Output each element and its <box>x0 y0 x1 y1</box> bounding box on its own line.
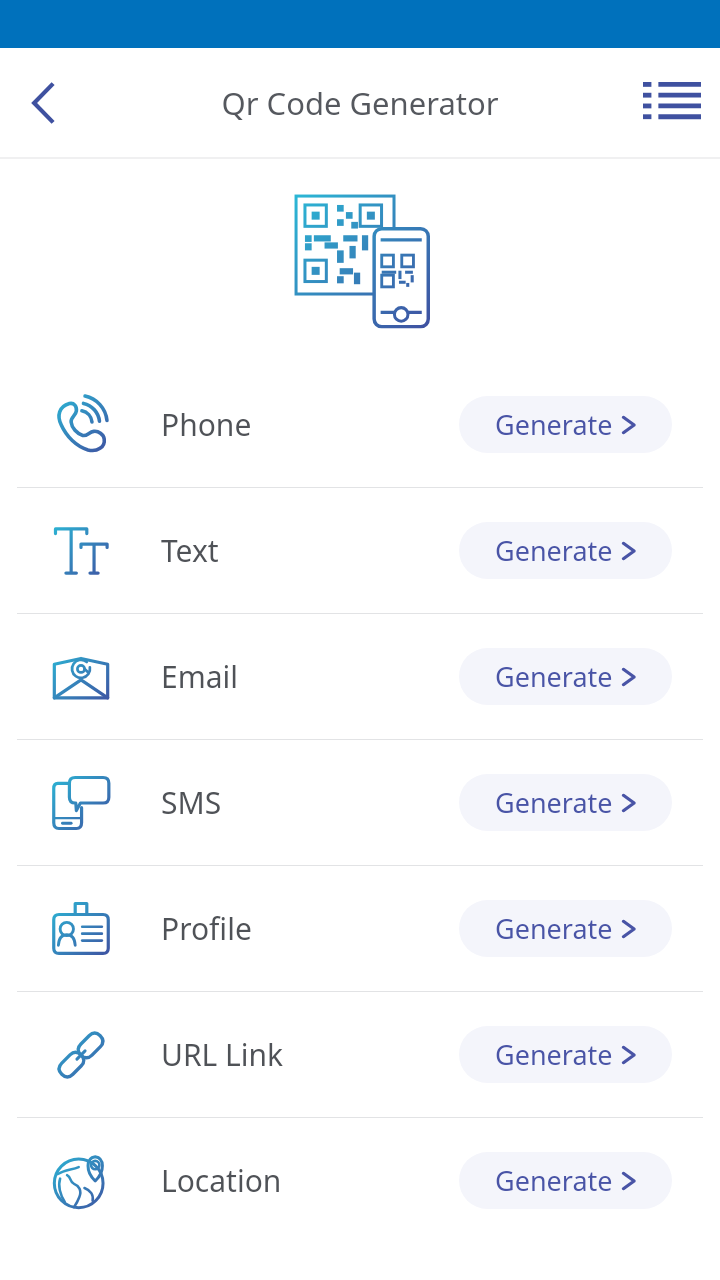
staticText: Profile <box>161 908 252 949</box>
button[interactable]: SMS <box>0 740 720 865</box>
staticText: Phone <box>161 404 252 445</box>
button[interactable]: Generate <box>459 396 672 453</box>
button[interactable]: Profile <box>0 866 720 991</box>
staticText: Generate <box>495 658 613 695</box>
staticText: Text <box>161 530 219 571</box>
button[interactable]: Generate <box>459 522 672 579</box>
staticText: Generate <box>495 1162 613 1199</box>
button[interactable]: Generate <box>459 1026 672 1083</box>
staticText: Qr Code Generator <box>221 82 499 124</box>
staticText: Location <box>161 1160 282 1201</box>
staticText: Generate <box>495 532 613 569</box>
button[interactable]: Text <box>0 488 720 613</box>
staticText: SMS <box>161 782 222 823</box>
button[interactable]: Generate <box>459 900 672 957</box>
button[interactable]: Generate <box>459 648 672 705</box>
staticText: URL Link <box>161 1034 284 1075</box>
button[interactable]: Location <box>0 1118 720 1243</box>
staticText: Generate <box>495 784 613 821</box>
button[interactable]: Generate <box>459 1152 672 1209</box>
button[interactable]: Email <box>0 614 720 739</box>
button[interactable]: Back <box>14 73 74 133</box>
staticText: Generate <box>495 910 613 947</box>
button[interactable]: List <box>638 69 706 137</box>
staticText: Generate <box>495 406 613 443</box>
staticText: Email <box>161 656 239 697</box>
button[interactable]: Phone <box>0 362 720 487</box>
button[interactable]: URL Link <box>0 992 720 1117</box>
button[interactable]: Generate <box>459 774 672 831</box>
staticText: Generate <box>495 1036 613 1073</box>
